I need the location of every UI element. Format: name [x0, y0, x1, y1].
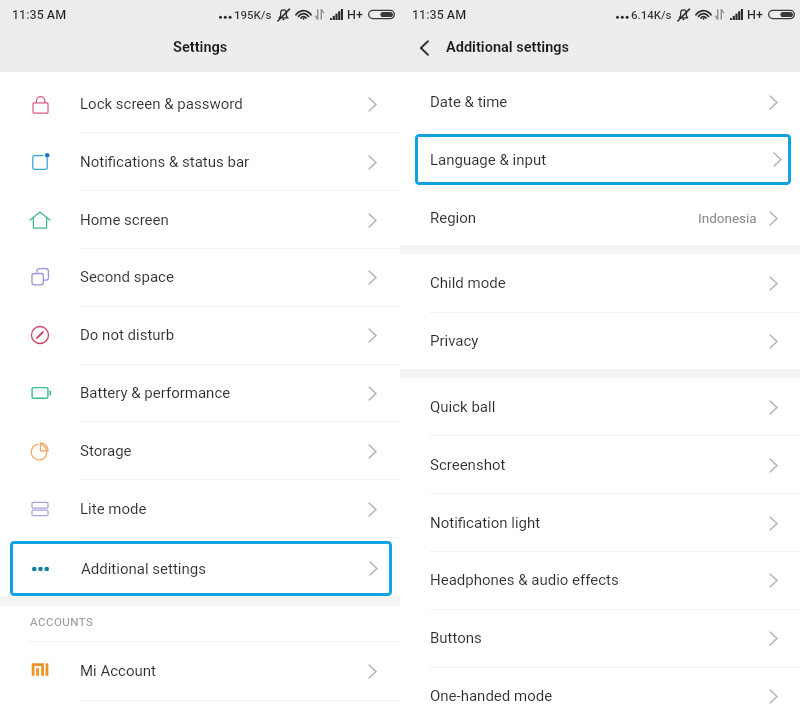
button[interactable]: Headphones & audio effects	[400, 551, 800, 609]
button[interactable]: Lock screen & password	[0, 75, 400, 133]
staticText: Date & time	[430, 93, 508, 111]
button[interactable]: Privacy	[400, 312, 800, 370]
button[interactable]: Battery & performance	[0, 364, 400, 422]
button[interactable]: Quick ball	[400, 378, 800, 436]
staticText: ACCOUNTS	[30, 615, 94, 628]
staticText: Storage	[80, 442, 132, 460]
button[interactable]: Notification light	[400, 494, 800, 552]
button[interactable]: Lite mode	[0, 480, 400, 538]
button[interactable]: Second space	[0, 248, 400, 306]
button[interactable]: Buttons	[400, 609, 800, 667]
button[interactable]: Child mode	[400, 254, 800, 312]
staticText: Buttons	[430, 629, 482, 647]
staticText: Region	[430, 209, 477, 227]
staticText: Notification light	[430, 514, 541, 532]
staticText: Screenshot	[430, 456, 506, 474]
button[interactable]: Additional settings	[10, 541, 392, 596]
button[interactable]: Storage	[0, 422, 400, 480]
staticText: Additional settings	[446, 39, 570, 56]
staticText: 11:35 AM	[12, 7, 67, 22]
staticText: H+	[747, 7, 763, 22]
staticText: Child mode	[430, 274, 506, 292]
button[interactable]: Mi Account	[0, 642, 400, 700]
staticText: Privacy	[430, 332, 479, 350]
button[interactable]: One-handed mode	[400, 667, 800, 708]
staticText: Home screen	[80, 211, 169, 229]
button[interactable]: Home screen	[0, 191, 400, 249]
staticText: Headphones & audio effects	[430, 571, 619, 589]
staticText: Settings	[173, 39, 228, 56]
button[interactable]: Language & input	[415, 134, 791, 185]
button[interactable]: Do not disturb	[0, 306, 400, 364]
button[interactable]: Screenshot	[400, 436, 800, 494]
staticText: H+	[347, 7, 363, 22]
staticText: One-handed mode	[430, 687, 553, 705]
staticText: Battery & performance	[80, 384, 231, 402]
staticText: Quick ball	[430, 398, 496, 416]
button[interactable]: Date & time	[400, 73, 800, 131]
staticText: Indonesia	[698, 210, 757, 226]
staticText: Additional settings	[81, 560, 206, 578]
staticText: Mi Account	[80, 662, 156, 680]
staticText: Notifications & status bar	[80, 153, 250, 171]
staticText: Do not disturb	[80, 326, 175, 344]
staticText: Lite mode	[80, 500, 147, 518]
staticText: Language & input	[430, 151, 547, 169]
button[interactable]: Back	[406, 30, 442, 66]
staticText: Second space	[80, 268, 174, 286]
staticText: 195K/s	[234, 8, 272, 21]
staticText: 11:35 AM	[412, 7, 467, 22]
staticText: 6.14K/s	[631, 8, 672, 21]
button[interactable]: Notifications & status bar	[0, 133, 400, 191]
button[interactable]: Region	[400, 189, 800, 247]
staticText: Lock screen & password	[80, 95, 243, 113]
